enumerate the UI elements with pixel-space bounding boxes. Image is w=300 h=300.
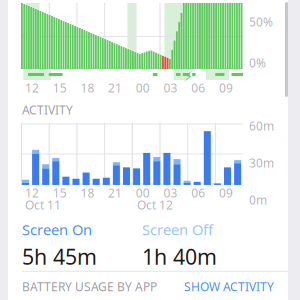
staticText: 12 xyxy=(25,185,39,201)
button[interactable]: Screen On xyxy=(22,220,142,271)
staticText: 1h 40m xyxy=(142,242,217,271)
staticText: 09 xyxy=(219,80,233,96)
staticText: 03 xyxy=(163,80,177,96)
staticText: 5h 45m xyxy=(22,242,97,271)
staticText: 12 xyxy=(25,80,39,96)
staticText: 00 xyxy=(136,80,150,96)
staticText: 06 xyxy=(191,80,205,96)
staticText: BATTERY USAGE BY APP xyxy=(22,279,157,295)
staticText: 03 xyxy=(163,185,177,201)
staticText: 09 xyxy=(219,185,233,201)
staticText: 18 xyxy=(80,80,94,96)
staticText: 06 xyxy=(191,185,205,201)
staticText: 18 xyxy=(80,185,94,201)
button[interactable]: Screen Off xyxy=(142,220,262,271)
staticText: 21 xyxy=(108,185,122,201)
staticText: 50% xyxy=(249,14,273,30)
staticText: 00 xyxy=(136,185,150,201)
staticText: 21 xyxy=(108,80,122,96)
staticText: ⚡︎ xyxy=(183,68,193,85)
staticText: 15 xyxy=(53,80,67,96)
staticText: Oct 11 xyxy=(25,197,61,213)
staticText: Screen Off xyxy=(142,220,213,239)
staticText: 30m xyxy=(249,155,274,171)
staticText: 0m xyxy=(249,192,267,208)
staticText: ACTIVITY xyxy=(22,102,73,118)
staticText: Screen On xyxy=(22,220,92,239)
staticText: SHOW ACTIVITY xyxy=(184,279,274,295)
staticText: 0% xyxy=(249,55,266,71)
button[interactable]: SHOW ACTIVITY xyxy=(184,279,274,295)
staticText: 15 xyxy=(53,185,67,201)
staticText: 60m xyxy=(249,118,274,134)
staticText: Oct 12 xyxy=(137,197,173,213)
